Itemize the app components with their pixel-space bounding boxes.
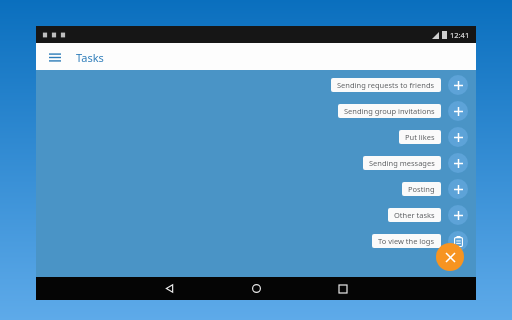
staticText: Sending messages [369, 158, 435, 168]
button[interactable]: Home [243, 277, 269, 300]
button[interactable]: Add task [448, 205, 468, 225]
staticText: To view the logs [378, 236, 435, 246]
button[interactable]: Add task [448, 127, 468, 147]
button[interactable]: To view the logs [372, 231, 468, 251]
button[interactable]: Sending messages [363, 153, 468, 173]
button[interactable]: View logs [448, 231, 468, 251]
staticText: Tasks [76, 50, 104, 65]
staticText: Posting [408, 184, 435, 194]
button[interactable]: Posting [402, 179, 468, 199]
button[interactable]: Put likes [399, 127, 468, 147]
button[interactable]: Recent apps [330, 277, 356, 300]
button[interactable]: Add task [448, 101, 468, 121]
button[interactable]: Add task [448, 179, 468, 199]
button[interactable]: Back [156, 277, 182, 300]
staticText: Other tasks [394, 210, 435, 220]
staticText: Put likes [405, 132, 435, 142]
button[interactable]: Open navigation menu [44, 46, 66, 68]
button[interactable]: Close [436, 243, 464, 271]
button[interactable]: Add task [448, 75, 468, 95]
staticText: Sending requests to friends [337, 80, 435, 90]
button[interactable]: Other tasks [388, 205, 468, 225]
button[interactable]: Sending requests to friends [331, 75, 468, 95]
staticText: 12:41 [450, 30, 470, 40]
button[interactable]: Sending group invitations [338, 101, 468, 121]
staticText: Sending group invitations [344, 106, 435, 116]
button[interactable]: Add task [448, 153, 468, 173]
